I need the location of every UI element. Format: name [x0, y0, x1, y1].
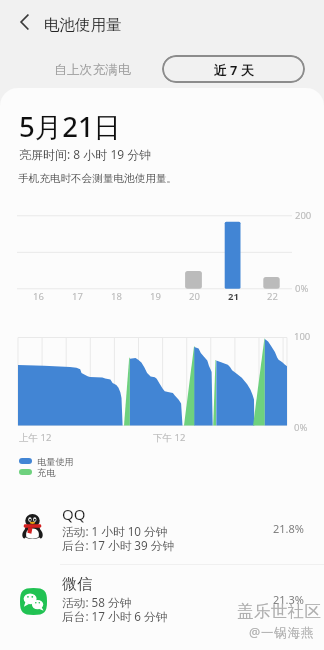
staticText: 100 [294, 330, 311, 343]
staticText: 18 [111, 290, 122, 303]
staticText: 手机充电时不会测量电池使用量。 [18, 172, 177, 185]
staticText: 活动: 58 分钟 [62, 594, 132, 610]
staticText: 后台: 17 小时 6 分钟 [62, 608, 168, 624]
staticText: 16 [33, 290, 44, 303]
staticText: 200 [295, 209, 312, 222]
staticText: 近 7 天 [214, 61, 254, 78]
button[interactable]: QQ [0, 495, 324, 566]
staticText: 电池使用量 [44, 15, 122, 35]
button[interactable]: Back [4, 4, 40, 40]
staticText: 21 [228, 290, 239, 303]
staticText: 21.8% [273, 521, 304, 536]
button[interactable]: 近 7 天 [162, 55, 305, 83]
staticText: 5月21日 [19, 108, 122, 146]
button[interactable]: 自上次充满电 [40, 56, 145, 84]
staticText: QQ [62, 504, 86, 524]
staticText: 电量使用 [37, 456, 74, 468]
staticText: @一锅海燕 [249, 624, 315, 641]
staticText: 19 [150, 290, 161, 303]
staticText: 上午 12 [19, 431, 52, 444]
staticText: 微信 [62, 575, 92, 594]
staticText: 充电 [37, 467, 56, 479]
staticText: 活动: 1 小时 10 分钟 [62, 523, 168, 539]
button[interactable]: 微信 [0, 566, 324, 637]
staticText: 后台: 17 小时 39 分钟 [62, 537, 175, 553]
staticText: 0% [295, 282, 309, 295]
staticText: 0% [294, 421, 308, 434]
staticText: 下午 12 [153, 431, 186, 444]
staticText: 21.3% [273, 592, 304, 607]
staticText: 22 [267, 290, 278, 303]
staticText: 亮屏时间: 8 小时 19 分钟 [19, 146, 152, 162]
staticText: 盖乐世社区 [237, 601, 322, 622]
staticText: 自上次充满电 [54, 62, 131, 78]
staticText: 17 [72, 290, 83, 303]
staticText: 20 [189, 290, 200, 303]
